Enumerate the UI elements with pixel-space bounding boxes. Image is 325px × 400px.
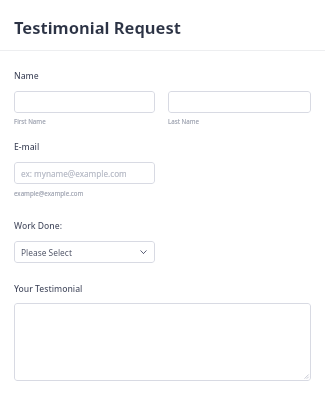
button[interactable] [14, 91, 155, 113]
button[interactable] [14, 303, 311, 381]
staticText: Your Testimonial [14, 283, 83, 295]
staticText: ex: myname@example.com [21, 168, 127, 179]
staticText: Last Name [168, 117, 199, 125]
staticText: Name [14, 70, 39, 82]
staticText: Testimonial Request [14, 16, 181, 38]
staticText: example@example.com [14, 189, 84, 197]
staticText: Please Select [21, 247, 72, 258]
button[interactable]: Please Select [14, 241, 155, 263]
other: Open work done list [139, 248, 148, 257]
button[interactable]: ex: myname@example.com [14, 162, 155, 184]
staticText: Work Done: [14, 220, 63, 232]
staticText: E-mail [14, 141, 40, 153]
staticText: First Name [14, 117, 46, 125]
button[interactable] [168, 91, 311, 113]
